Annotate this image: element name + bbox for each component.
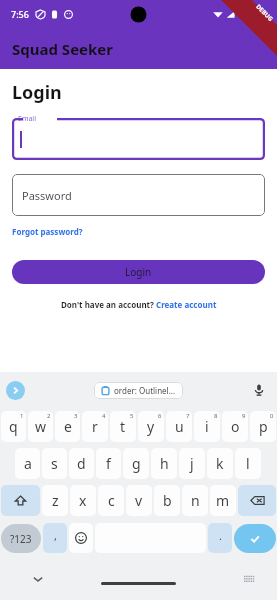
staticText: Password [22, 188, 72, 203]
staticText: s [51, 454, 58, 473]
button[interactable]: r [82, 411, 108, 442]
staticText: y [147, 417, 155, 436]
button[interactable]: z [42, 485, 68, 516]
staticText: . [219, 528, 222, 543]
button[interactable]: h [151, 448, 177, 479]
button[interactable]: p [250, 411, 276, 442]
button[interactable]: c [98, 485, 124, 516]
staticText: f [106, 454, 111, 473]
button[interactable]: Voice input [251, 382, 267, 398]
button[interactable]: Backspace [238, 485, 276, 516]
staticText: m [216, 491, 230, 510]
staticText: Squad Seeker [12, 39, 113, 59]
staticText: 7 [186, 412, 190, 420]
button[interactable]: Enter [234, 524, 276, 553]
button[interactable]: t [110, 411, 136, 442]
staticText: 9 [242, 412, 246, 420]
button[interactable]: Expand suggestions [6, 381, 25, 400]
staticText: 7:56 [11, 8, 29, 20]
staticText: c [108, 491, 115, 510]
button[interactable]: q [1, 411, 26, 442]
staticText: l [246, 454, 250, 473]
staticText: j [190, 454, 194, 473]
staticText: v [135, 491, 143, 510]
button[interactable]: Password [12, 174, 265, 216]
staticText: k [216, 454, 224, 473]
button[interactable]: , [43, 523, 67, 553]
button[interactable]: o [222, 411, 248, 442]
staticText: n [191, 491, 200, 510]
staticText: ?123 [10, 532, 32, 546]
staticText: DEBUG [254, 3, 275, 23]
staticText: z [52, 491, 59, 510]
staticText: b [163, 491, 172, 510]
staticText: d [77, 454, 86, 473]
staticText: 2 [47, 412, 51, 420]
staticText: o [231, 417, 240, 436]
staticText: q [9, 417, 18, 436]
staticText: 6 [158, 412, 162, 420]
button[interactable]: g [123, 448, 149, 479]
button[interactable]: ?123 [1, 524, 41, 553]
staticText: 4 [102, 412, 106, 420]
button[interactable]: n [182, 485, 208, 516]
staticText: r [92, 417, 98, 436]
button[interactable]: w [28, 411, 53, 442]
button[interactable]: k [207, 448, 233, 479]
button[interactable]: v [126, 485, 152, 516]
button[interactable]: l [235, 448, 261, 479]
staticText: Login [125, 265, 152, 279]
button[interactable]: Create account [156, 299, 217, 310]
staticText: 1 [20, 412, 24, 420]
button[interactable]: x [70, 485, 96, 516]
button[interactable]: f [96, 448, 121, 479]
button[interactable]: s [42, 448, 67, 479]
staticText: order: Outlinel... [114, 385, 176, 396]
button[interactable]: Login [12, 260, 265, 284]
button[interactable]: Emoji [69, 523, 93, 553]
button[interactable]: b [154, 485, 180, 516]
staticText: a [24, 454, 32, 473]
staticText: Don't have an account? [61, 299, 156, 310]
staticText: w [35, 417, 47, 436]
button[interactable]: order: Outlinel... [94, 382, 183, 399]
staticText: t [120, 417, 126, 436]
staticText: h [160, 454, 169, 473]
button[interactable]: a [15, 448, 40, 479]
staticText: 0 [270, 412, 274, 420]
staticText: p [259, 417, 268, 436]
staticText: Email [18, 114, 36, 124]
button[interactable]: u [166, 411, 192, 442]
staticText: , [54, 528, 57, 543]
staticText: Login [12, 80, 62, 105]
staticText: x [79, 491, 87, 510]
staticText: g [132, 454, 141, 473]
staticText: 8 [214, 412, 218, 420]
button[interactable]: Forgot password? [12, 226, 83, 237]
staticText: 5 [130, 412, 134, 420]
button[interactable]: Shift [1, 485, 40, 516]
button[interactable]: . [208, 523, 232, 553]
button[interactable]: y [138, 411, 164, 442]
button[interactable]: e [55, 411, 80, 442]
staticText: i [205, 417, 209, 436]
button[interactable]: m [210, 485, 236, 516]
staticText: u [175, 417, 184, 436]
staticText: e [64, 417, 72, 436]
button[interactable]: Email [12, 118, 265, 160]
button[interactable]: j [179, 448, 205, 479]
button[interactable]: d [69, 448, 94, 479]
button[interactable]: i [194, 411, 220, 442]
staticText: 3 [74, 412, 78, 420]
